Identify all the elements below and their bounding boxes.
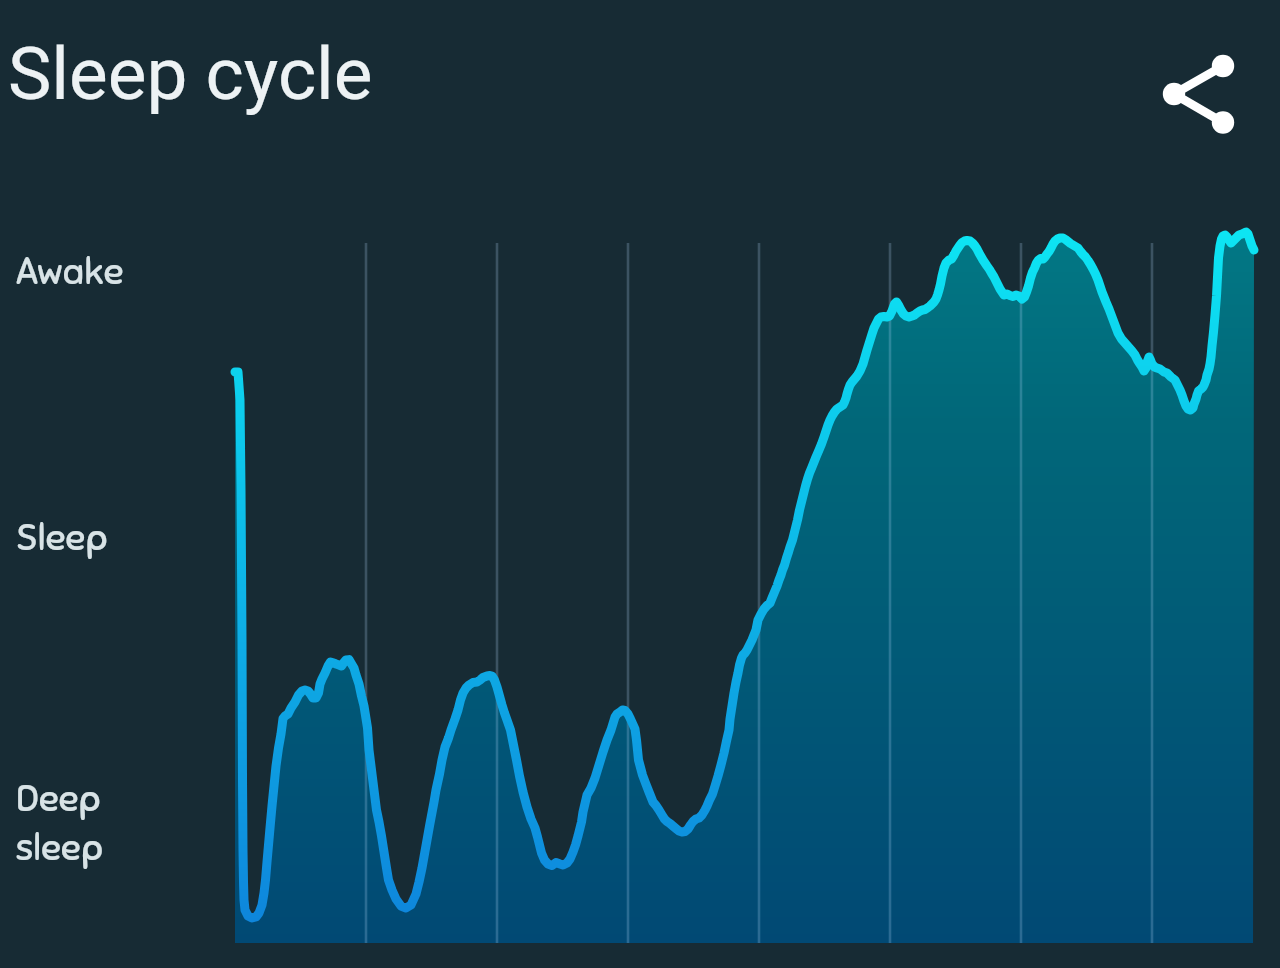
staticText: Sleep [16, 515, 108, 561]
staticText: Deep sleep [16, 776, 103, 871]
button[interactable]: Share [1150, 42, 1248, 140]
staticText: Awake [16, 249, 124, 295]
staticText: Sleep cycle [8, 31, 373, 117]
